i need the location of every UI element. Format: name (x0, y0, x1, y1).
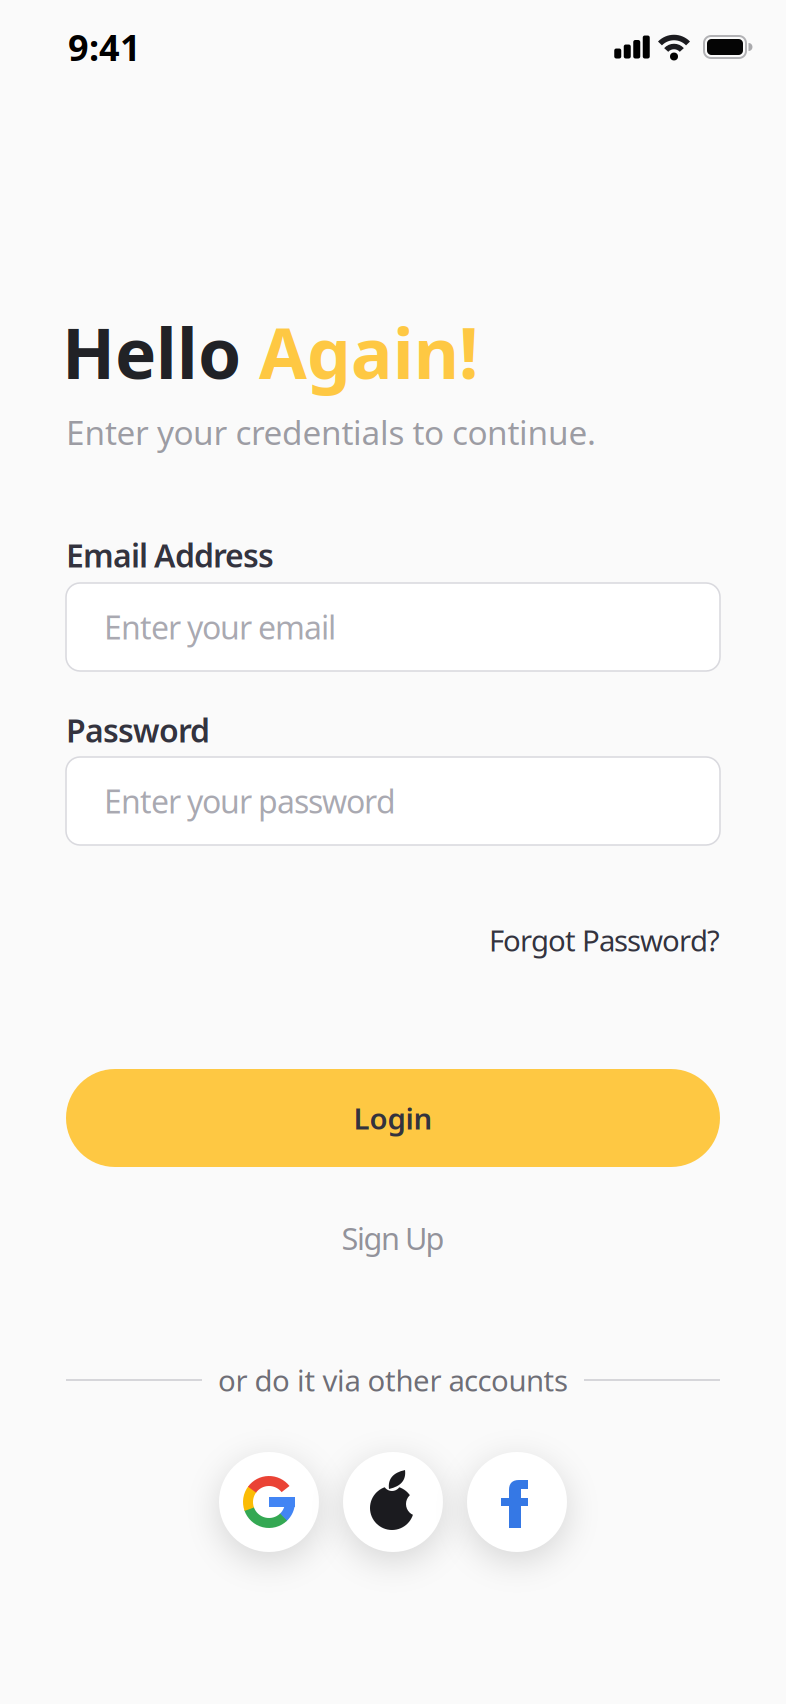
button[interactable]: Login (66, 1069, 720, 1167)
staticText: Password (66, 709, 210, 751)
staticText: Forgot Password? (489, 920, 720, 959)
button[interactable]: Sign Up (341, 1218, 444, 1258)
button[interactable]: Sign in with Apple (343, 1452, 443, 1552)
staticText: or do it via other accounts (218, 1360, 568, 1399)
staticText: Email Address (66, 534, 274, 576)
staticText: Enter your email (104, 606, 336, 648)
button[interactable]: Sign in with Facebook (467, 1452, 567, 1552)
staticText: Hello (62, 306, 259, 398)
staticText: Sign Up (341, 1218, 444, 1258)
button[interactable]: Forgot Password? (489, 920, 720, 959)
button[interactable]: Enter your email (66, 583, 720, 671)
staticText: Enter your credentials to continue. (66, 410, 596, 454)
staticText: 9:41 (68, 23, 141, 71)
staticText: Enter your password (104, 780, 396, 822)
button[interactable]: Enter your password (66, 757, 720, 845)
button[interactable]: Sign in with Google (219, 1452, 319, 1552)
staticText: Login (353, 1098, 432, 1137)
staticText: Again! (259, 306, 479, 398)
